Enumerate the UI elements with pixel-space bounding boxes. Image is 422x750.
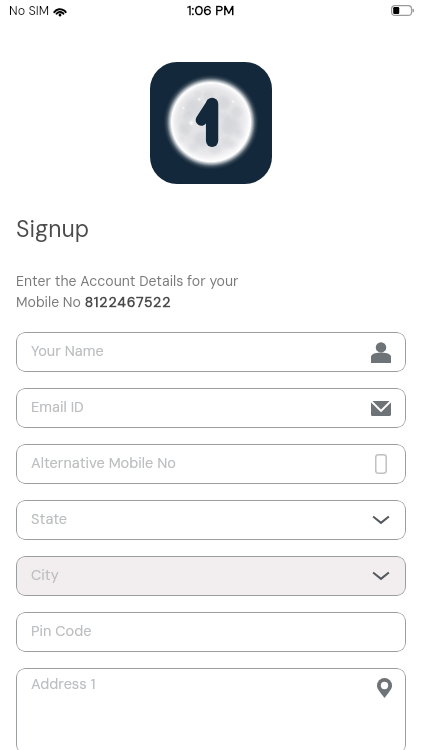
staticText: Your Name [31, 342, 104, 361]
staticText: Address 1 [31, 675, 96, 694]
staticText: 1:06 PM [187, 2, 235, 20]
button[interactable]: City [16, 556, 406, 596]
button[interactable]: Email ID [16, 388, 406, 428]
button[interactable]: State [16, 500, 406, 540]
staticText: Pin Code [31, 622, 92, 641]
other: Open dropdown [373, 571, 389, 581]
button[interactable]: Pin Code [16, 612, 406, 652]
staticText: City [31, 566, 59, 585]
other: Email [371, 401, 391, 416]
other: Open dropdown [373, 515, 389, 525]
staticText: No SIM [9, 3, 50, 19]
staticText: Alternative Mobile No [31, 454, 176, 473]
button[interactable]: Alternative Mobile No [16, 444, 406, 484]
other: Address [377, 678, 392, 698]
staticText: Enter the Account Details for your Mobil… [16, 272, 239, 312]
staticText: Signup [16, 214, 90, 244]
button[interactable]: Address 1 [16, 668, 406, 750]
other: Mobile number [375, 454, 387, 474]
staticText: State [31, 510, 68, 529]
other: Name [371, 342, 391, 363]
staticText: Email ID [31, 398, 84, 417]
button[interactable]: Your Name [16, 332, 406, 372]
